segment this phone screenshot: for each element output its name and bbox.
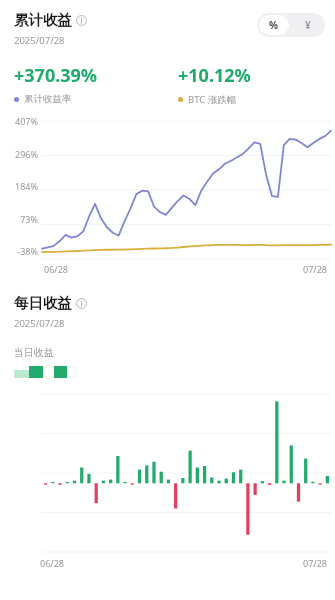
staticText: +370.39% [14,63,98,88]
staticText: 07/28 [303,263,327,275]
staticText: 06/28 [44,263,68,275]
staticText: BTC 涨跌幅 [188,93,237,106]
button[interactable]: Show yuan amount [291,13,325,37]
button[interactable]: Show percentage [259,15,289,35]
staticText: ¥ [305,18,311,32]
staticText: 06/28 [40,557,64,569]
staticText: 07/28 [303,557,327,569]
staticText: 2025/07/28 [14,34,65,47]
staticText: 407% [15,115,38,127]
staticText: 累计收益 [14,11,72,29]
staticText: -38% [17,245,38,257]
staticText: 296% [15,148,38,160]
staticText: 73% [20,213,38,225]
staticText: % [269,18,279,32]
staticText: +10.12% [178,63,251,88]
staticText: 2025/07/28 [14,317,65,330]
staticText: 184% [15,180,38,192]
staticText: 每日收益 [14,294,72,312]
staticText: 累计收益率 [24,93,72,105]
staticText: 当日收益 [14,346,54,359]
